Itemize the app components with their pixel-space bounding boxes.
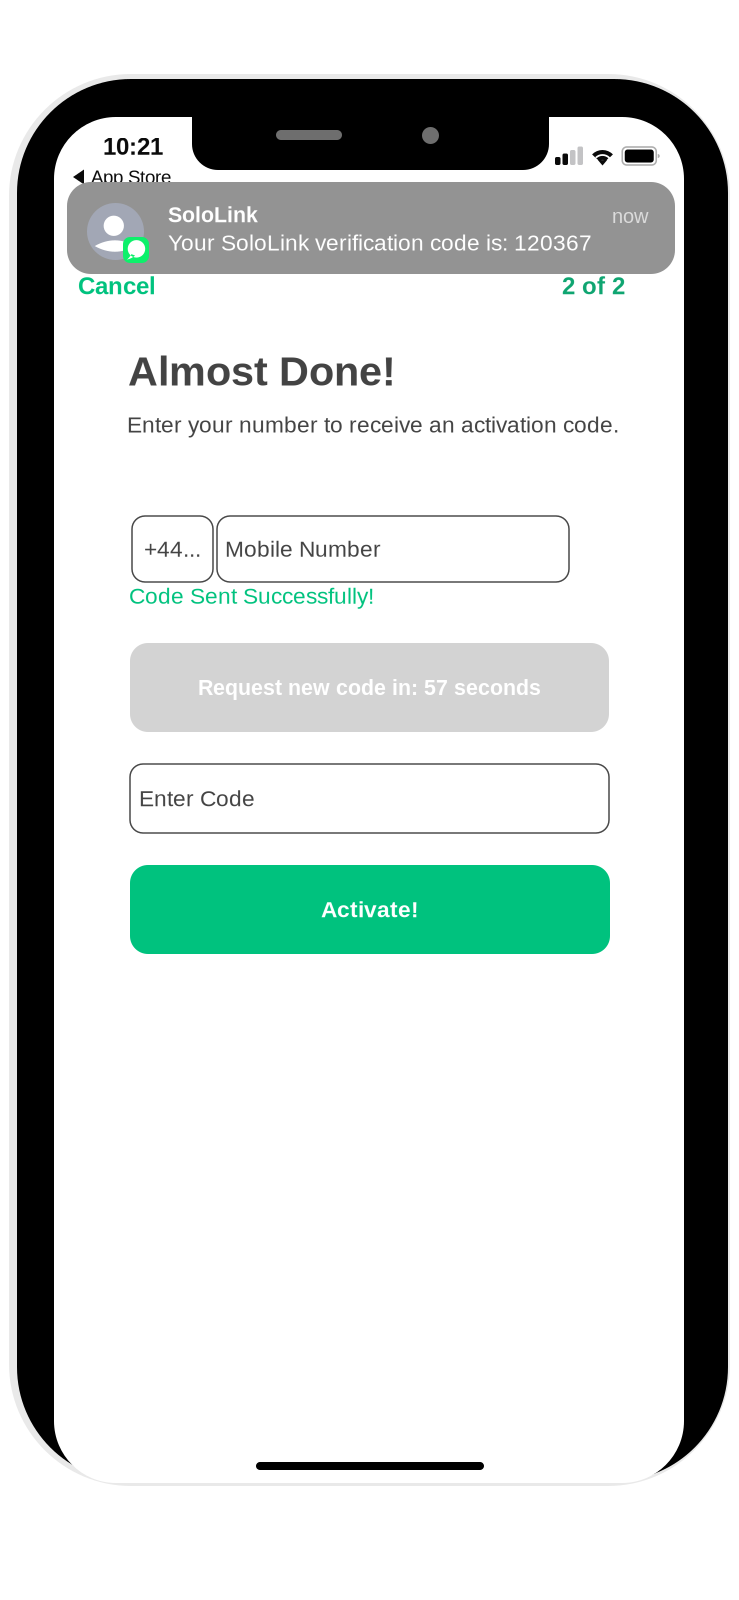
staticText: now: [612, 205, 648, 227]
staticText: Your SoloLink verification code is: 1203…: [168, 230, 592, 255]
staticText: Enter your number to receive an activati…: [127, 412, 619, 437]
button[interactable]: Cancel: [78, 269, 168, 303]
staticText: +44...: [144, 536, 201, 562]
button[interactable]: Activate!: [130, 865, 610, 954]
staticText: App Store: [91, 167, 171, 187]
button[interactable]: App Store: [73, 166, 183, 188]
staticText: Cancel: [78, 273, 156, 299]
staticText: 2 of 2: [562, 273, 625, 299]
staticText: Activate!: [321, 897, 419, 922]
button[interactable]: SoloLink: [67, 182, 675, 274]
staticText: Enter Code: [139, 786, 255, 811]
staticText: 10:21: [103, 133, 163, 160]
staticText: Request new code in: 57 seconds: [198, 676, 541, 699]
staticText: Code Sent Successfully!: [129, 583, 374, 609]
staticText: Mobile Number: [225, 536, 381, 562]
staticText: SoloLink: [168, 203, 258, 227]
staticText: Almost Done!: [128, 348, 396, 394]
button[interactable]: Request new code in: 57 seconds: [130, 643, 609, 732]
